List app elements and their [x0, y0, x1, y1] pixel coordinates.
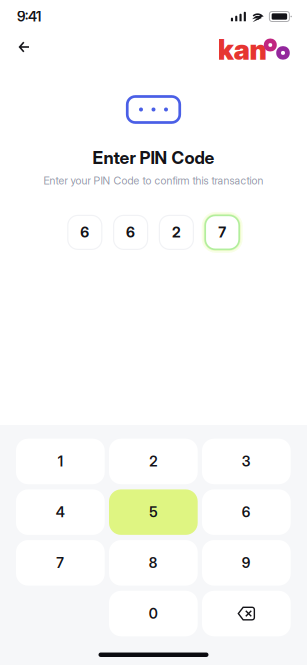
staticText: Enter your PIN Code to confirm this tran…: [43, 174, 263, 187]
staticText: kan: [217, 32, 266, 66]
staticText: Enter PIN Code: [92, 147, 214, 168]
staticText: 4: [56, 504, 65, 521]
staticText: 3: [242, 453, 251, 470]
button[interactable]: 8: [109, 540, 198, 586]
button[interactable]: 3: [202, 439, 291, 484]
button[interactable]: 7: [16, 540, 105, 586]
staticText: 7: [218, 224, 226, 241]
button[interactable]: 2: [109, 439, 198, 484]
button[interactable]: Delete: [202, 591, 291, 636]
staticText: 2: [149, 453, 157, 470]
button[interactable]: 6: [202, 489, 291, 535]
staticText: 6: [126, 224, 135, 241]
button[interactable]: 5: [109, 489, 198, 535]
button[interactable]: 1: [16, 439, 105, 484]
staticText: 5: [149, 504, 157, 521]
staticText: 2: [172, 224, 181, 241]
staticText: 8: [149, 554, 158, 571]
staticText: 1: [58, 453, 63, 470]
staticText: 9:41: [17, 8, 41, 25]
staticText: 0: [149, 605, 158, 622]
staticText: 7: [56, 554, 64, 571]
button[interactable]: 9: [202, 540, 291, 586]
button[interactable]: 4: [16, 489, 105, 535]
button[interactable]: 0: [109, 591, 198, 636]
staticText: 6: [242, 504, 251, 521]
button[interactable]: Back: [9, 32, 39, 62]
staticText: 6: [80, 224, 89, 241]
staticText: 9: [242, 554, 251, 571]
